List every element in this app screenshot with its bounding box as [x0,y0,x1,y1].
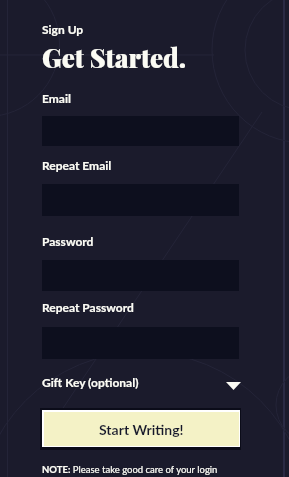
button[interactable]: Start Writing! [40,408,241,450]
staticText: Email [42,91,71,105]
staticText: Repeat Email [42,158,112,172]
other: Expand gift key [226,382,241,390]
button[interactable]: Gift Key (optional) [42,372,239,392]
staticText: Password [42,234,94,248]
button[interactable]: Sign Up [42,22,84,36]
staticText: NOTE: Please take good care of your logi… [42,464,218,475]
staticText: Repeat Password [42,300,134,314]
staticText: Start Writing! [99,421,184,438]
staticText: Get Started. [42,40,187,75]
staticText: Gift Key (optional) [42,375,139,389]
